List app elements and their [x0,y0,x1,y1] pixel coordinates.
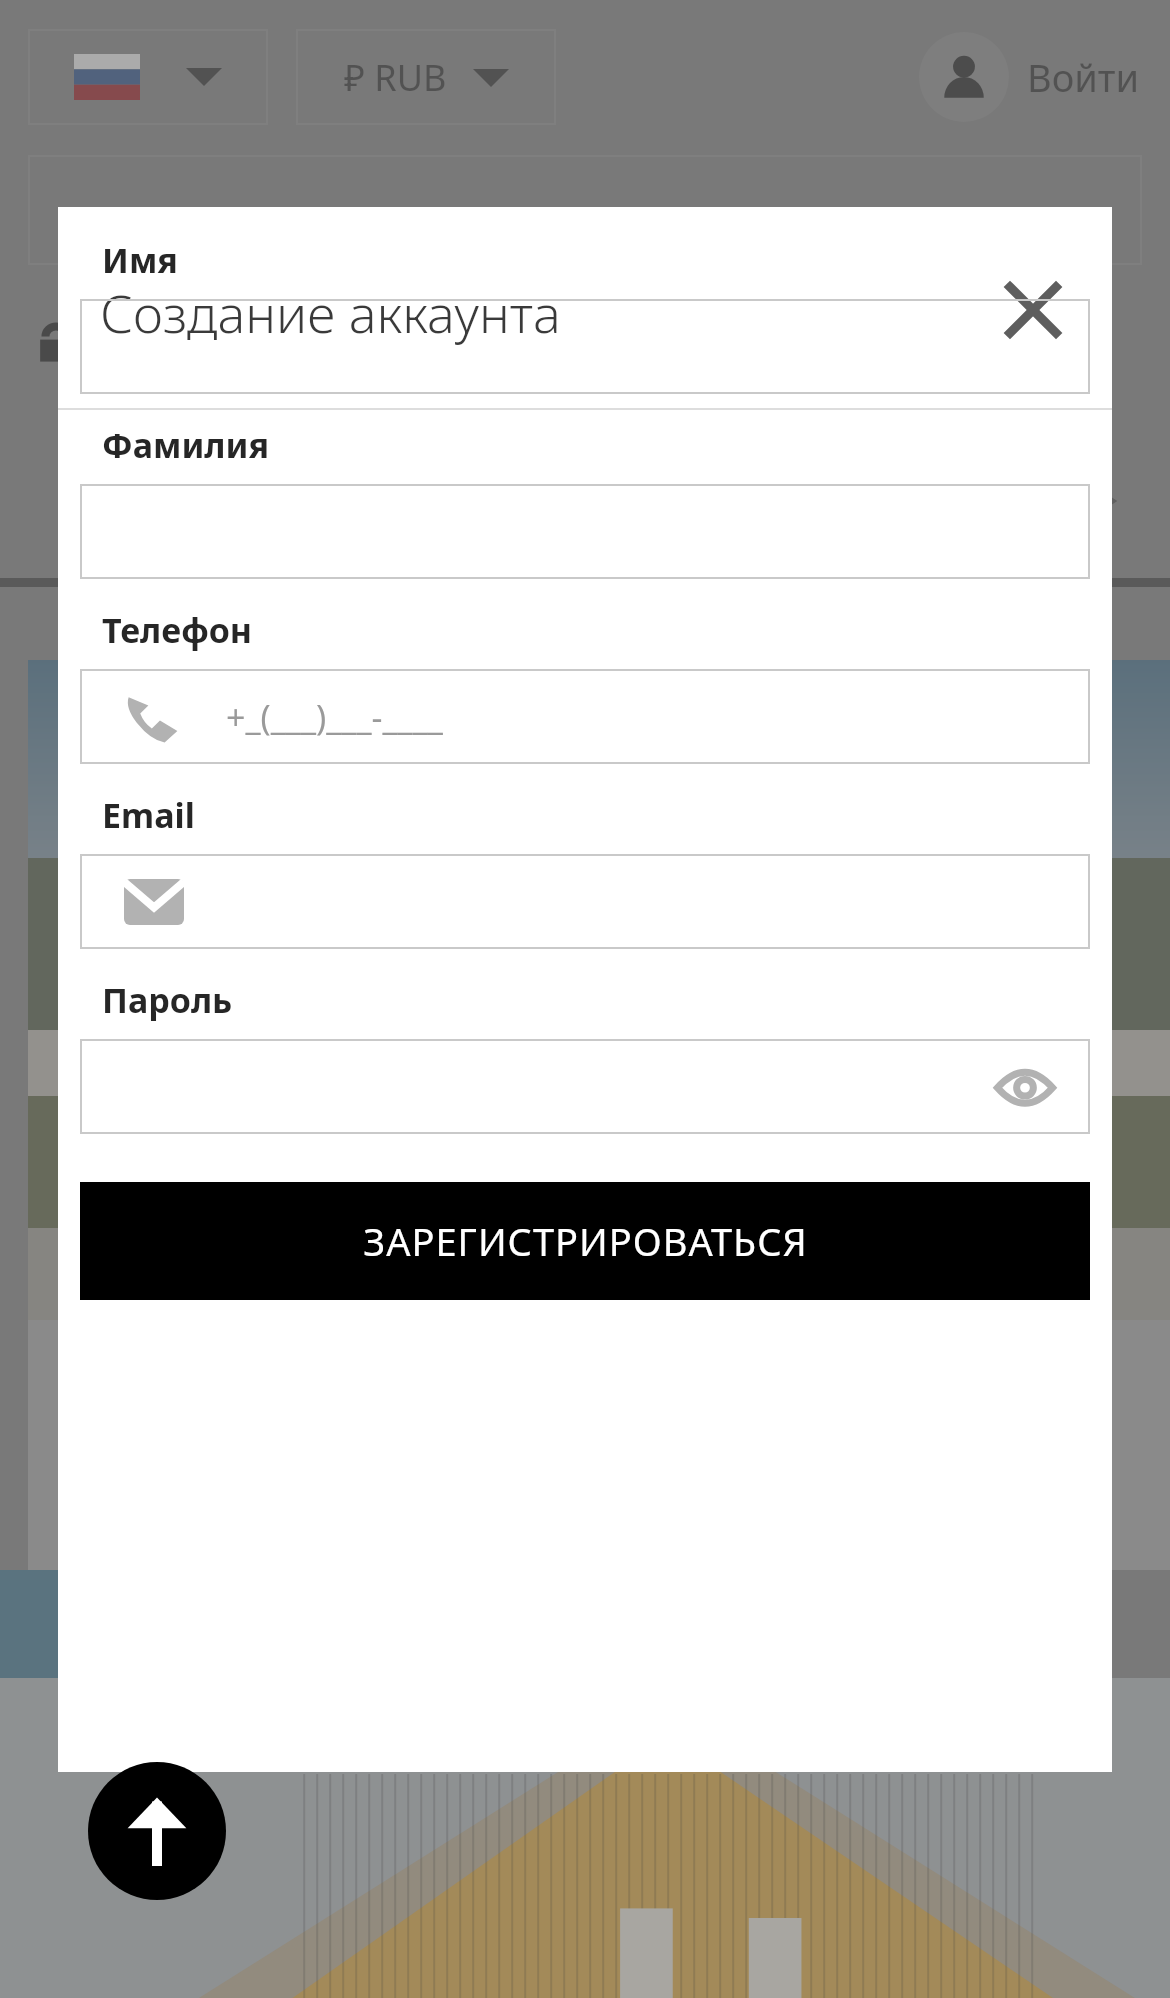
staticText: Имя [102,237,178,283]
staticText: Телефон [102,607,253,653]
button[interactable]: Показать пароль [994,1056,1056,1118]
button[interactable] [28,155,1142,265]
button[interactable]: Снять 1 коттедж [0,1570,408,1678]
staticText: Фамилия [102,422,269,468]
button[interactable] [28,660,1142,1760]
button[interactable]: ЗАРЕГИСТРИРОВАТЬСЯ [80,1182,1090,1300]
button[interactable]: Войти [919,32,1170,122]
staticText: Пароль [102,977,233,1023]
button[interactable]: Email [80,854,1090,949]
button[interactable]: Закрыть [988,265,1078,355]
staticText: ₽ RUB [344,53,447,102]
button[interactable]: Телефон [80,669,1090,764]
button[interactable]: Фамилия [80,484,1090,579]
button[interactable]: Наверх [88,1762,226,1900]
button[interactable]: Имя [80,299,1090,394]
staticText: ЗАРЕГИСТРИРОВАТЬСЯ [363,1215,808,1267]
staticText: Email [102,792,195,838]
button[interactable]: Выбор валюты [296,29,556,125]
button[interactable]: Пароль [80,1039,1090,1134]
staticText: Войти [1027,51,1140,103]
staticText: +_(___)___-____ [226,694,443,740]
button[interactable] [1082,660,1170,1760]
button[interactable]: Выбор языка [28,29,268,125]
staticText: Создание аккаунта [100,277,561,348]
